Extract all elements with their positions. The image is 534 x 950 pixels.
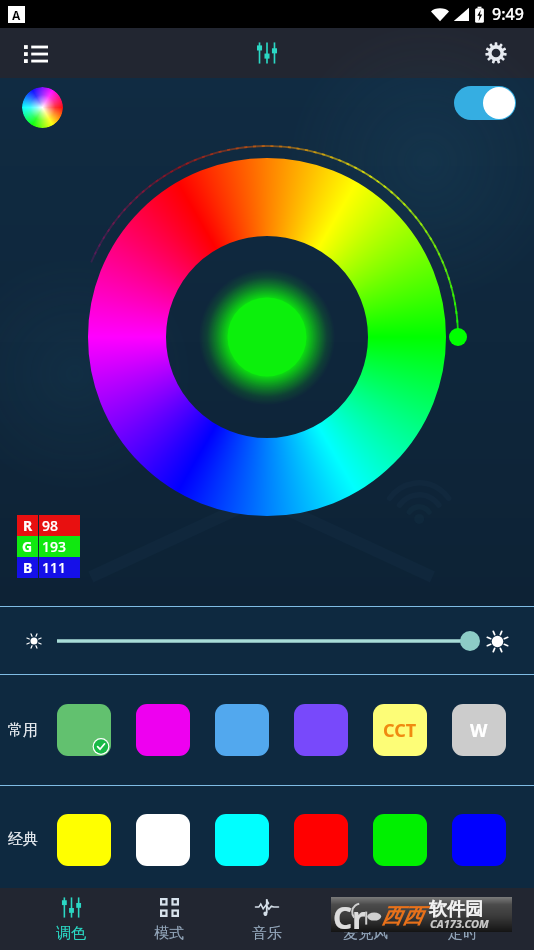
button[interactable]: Settings — [476, 33, 516, 73]
staticText: B — [23, 558, 33, 577]
button[interactable]: Power — [454, 86, 516, 120]
staticText: W — [470, 718, 488, 743]
button[interactable] — [57, 814, 111, 866]
staticText: R — [23, 516, 33, 535]
staticText: 9:49 — [492, 3, 524, 25]
staticText: G — [22, 537, 33, 556]
staticText: Cr — [333, 897, 366, 930]
button[interactable] — [215, 704, 269, 756]
button[interactable] — [452, 814, 506, 866]
staticText: CA173.COM — [430, 916, 489, 931]
button[interactable] — [373, 814, 427, 866]
staticText: 麦克风 — [343, 924, 388, 943]
button[interactable]: W — [452, 704, 506, 756]
button[interactable]: Brightness — [51, 624, 476, 658]
button[interactable] — [57, 704, 111, 756]
staticText: 常用 — [8, 721, 38, 740]
staticText: 调色 — [56, 924, 86, 943]
staticText: 111 — [42, 558, 67, 577]
button[interactable]: 音乐 — [218, 888, 316, 950]
button[interactable] — [294, 704, 348, 756]
staticText: 定时 — [448, 924, 478, 943]
button[interactable]: Dim — [18, 625, 49, 656]
button[interactable] — [294, 814, 348, 866]
button[interactable]: Bright — [481, 625, 513, 657]
staticText: 经典 — [8, 830, 38, 849]
staticText: 西西 — [381, 903, 423, 929]
staticText: 软件园 — [429, 898, 483, 921]
button[interactable]: Tune — [245, 31, 289, 75]
staticText: 模式 — [154, 924, 184, 943]
button[interactable]: 定时 — [414, 888, 512, 950]
button[interactable]: 调色 — [22, 888, 120, 950]
staticText: 音乐 — [252, 924, 282, 943]
staticText: A — [12, 7, 21, 23]
staticText: 193 — [42, 537, 67, 556]
button[interactable]: 麦克风 — [316, 888, 414, 950]
button[interactable]: CCT — [373, 704, 427, 756]
button[interactable] — [136, 704, 190, 756]
staticText: CCT — [383, 718, 417, 743]
button[interactable]: Color picker — [22, 87, 63, 128]
button[interactable]: Menu — [16, 33, 56, 73]
button[interactable] — [215, 814, 269, 866]
button[interactable]: 模式 — [120, 888, 218, 950]
button[interactable] — [136, 814, 190, 866]
staticText: 98 — [42, 516, 59, 535]
